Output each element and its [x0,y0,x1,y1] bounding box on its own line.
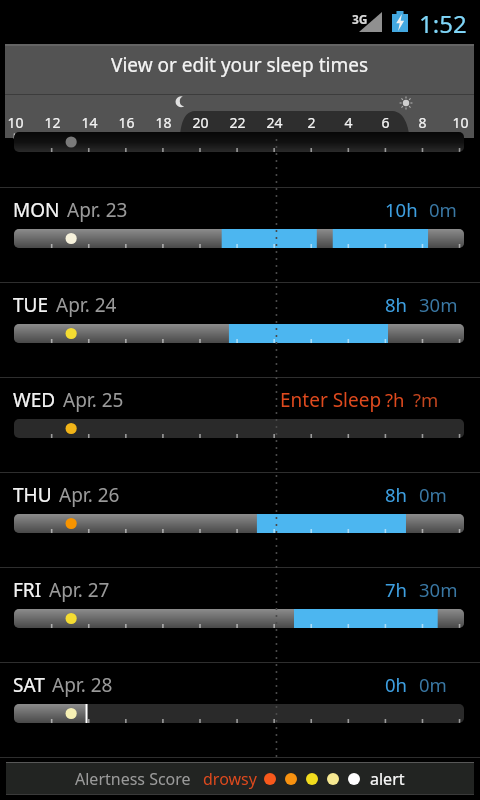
button[interactable]: WED [0,378,480,473]
staticText: Apr. 27 [49,577,110,603]
staticText: THU [13,482,52,508]
staticText: 3G [352,11,368,27]
staticText: SAT [13,672,45,698]
staticText: Apr. 28 [52,672,113,698]
staticText: 10 [7,113,24,132]
staticText: 0m [429,197,457,222]
staticText: ?h [385,387,405,412]
staticText: ?m [413,387,439,412]
staticText: FRI [13,577,42,603]
staticText: MON [13,197,60,223]
staticText: alert [370,768,405,790]
button[interactable]: MON [0,188,480,283]
staticText: Alertness Score [75,768,191,790]
button[interactable]: SAT [0,663,480,758]
staticText: 0h [385,672,408,697]
staticText: Apr. 23 [67,197,128,223]
button[interactable]: FRI [0,568,480,663]
staticText: 7h [385,577,408,602]
staticText: drowsy [203,768,257,790]
button[interactable]: Alertness Score [6,762,474,795]
button[interactable] [0,138,480,188]
staticText: 1:52 [419,7,467,40]
staticText: TUE [13,292,49,318]
staticText: 8h [385,292,408,317]
staticText: 16 [118,113,135,132]
staticText: 6 [381,113,390,132]
staticText: 8h [385,482,408,507]
button[interactable]: THU [0,473,480,568]
staticText: 0m [419,482,447,507]
staticText: 22 [229,113,246,132]
staticText: Apr. 26 [59,482,120,508]
staticText: 18 [155,113,172,132]
staticText: 10h [385,197,418,222]
staticText: Apr. 24 [56,292,117,318]
staticText: 4 [344,113,353,132]
staticText: View or edit your sleep times [111,52,369,78]
staticText: 12 [44,113,61,132]
staticText: 2 [307,113,316,132]
staticText: 30m [419,577,458,602]
staticText: 8 [418,113,427,132]
staticText: Enter Sleep [280,387,382,413]
staticText: WED [13,387,56,413]
staticText: 24 [266,113,283,132]
button[interactable]: View or edit your sleep times [5,44,474,138]
staticText: 0m [419,672,447,697]
staticText: 14 [81,113,98,132]
staticText: 20 [192,113,209,132]
staticText: 10 [452,113,469,132]
button[interactable]: TUE [0,283,480,378]
staticText: 30m [419,292,458,317]
staticText: Apr. 25 [63,387,124,413]
